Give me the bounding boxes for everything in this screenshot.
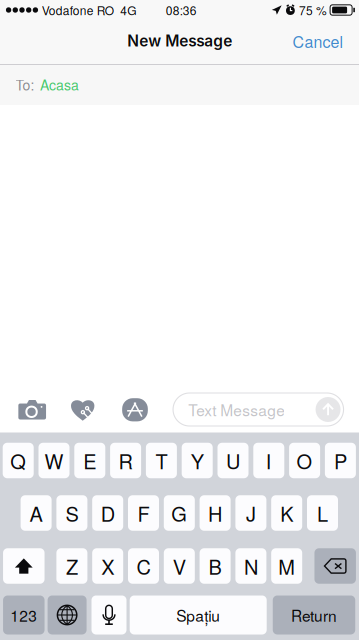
button[interactable]: A bbox=[21, 495, 52, 531]
staticText: C bbox=[136, 552, 150, 580]
staticText: New Message bbox=[127, 32, 232, 50]
button[interactable]: Cancel bbox=[283, 23, 353, 59]
staticText: D bbox=[101, 499, 115, 527]
staticText: To: bbox=[15, 74, 34, 94]
staticText: Z bbox=[66, 552, 78, 580]
button[interactable]: B bbox=[200, 548, 231, 584]
staticText: Y bbox=[191, 446, 204, 475]
button[interactable]: O bbox=[289, 443, 320, 478]
button[interactable]: D bbox=[92, 495, 123, 531]
button[interactable]: Text Message bbox=[173, 393, 344, 426]
button[interactable]: Spațiu bbox=[130, 595, 267, 634]
staticText: Return bbox=[291, 604, 337, 626]
button[interactable]: Y bbox=[182, 443, 213, 478]
button[interactable]: L bbox=[307, 495, 338, 531]
button[interactable]: H bbox=[200, 495, 231, 531]
staticText: Text Message bbox=[188, 398, 285, 421]
button[interactable]: 123 bbox=[3, 595, 45, 634]
button[interactable]: J bbox=[235, 495, 266, 531]
staticText: Acasa bbox=[40, 74, 79, 94]
button[interactable]: F bbox=[128, 495, 159, 531]
button[interactable]: Delete bbox=[314, 548, 356, 584]
button[interactable]: G bbox=[164, 495, 195, 531]
staticText: T bbox=[155, 446, 167, 475]
staticText: Vodafone RO bbox=[42, 1, 114, 19]
button[interactable]: Shift bbox=[3, 548, 45, 584]
button[interactable]: iMessage Apps bbox=[115, 390, 155, 430]
staticText: F bbox=[137, 499, 149, 527]
button[interactable]: P bbox=[325, 443, 356, 478]
staticText: M bbox=[278, 552, 295, 580]
button[interactable]: Z bbox=[56, 548, 87, 584]
staticText: W bbox=[44, 446, 63, 475]
staticText: 08:36 bbox=[166, 1, 197, 19]
staticText: Cancel bbox=[292, 29, 343, 52]
button[interactable]: Next keyboard bbox=[48, 595, 87, 634]
staticText: B bbox=[209, 552, 222, 580]
staticText: G bbox=[171, 499, 187, 527]
button[interactable]: Digital Touch bbox=[63, 390, 103, 430]
staticText: I bbox=[266, 446, 272, 475]
button[interactable]: R bbox=[110, 443, 141, 478]
button[interactable]: Q bbox=[3, 443, 34, 478]
button[interactable]: U bbox=[217, 443, 248, 478]
button[interactable]: N bbox=[235, 548, 266, 584]
button[interactable]: T bbox=[146, 443, 177, 478]
staticText: X bbox=[101, 552, 114, 580]
button[interactable]: Return bbox=[273, 595, 355, 634]
staticText: L bbox=[317, 499, 328, 527]
button[interactable]: M bbox=[271, 548, 302, 584]
staticText: H bbox=[208, 499, 222, 527]
staticText: N bbox=[244, 552, 258, 580]
button[interactable]: E bbox=[74, 443, 105, 478]
staticText: E bbox=[83, 446, 96, 475]
button[interactable]: I bbox=[253, 443, 284, 478]
button[interactable]: W bbox=[38, 443, 69, 478]
staticText: Q bbox=[10, 446, 26, 475]
button[interactable]: K bbox=[271, 495, 302, 531]
staticText: 75 % bbox=[299, 1, 327, 19]
button[interactable]: S bbox=[56, 495, 87, 531]
staticText: O bbox=[297, 446, 313, 475]
staticText: K bbox=[280, 499, 293, 527]
button[interactable]: X bbox=[92, 548, 123, 584]
staticText: A bbox=[30, 499, 43, 527]
staticText: J bbox=[246, 499, 256, 527]
staticText: V bbox=[173, 552, 186, 580]
staticText: P bbox=[334, 446, 347, 475]
staticText: 4G bbox=[120, 1, 136, 19]
button[interactable]: Dictation bbox=[91, 595, 126, 634]
staticText: 123 bbox=[10, 604, 37, 626]
staticText: R bbox=[119, 446, 133, 475]
staticText: Spațiu bbox=[176, 604, 220, 626]
button[interactable]: V bbox=[164, 548, 195, 584]
staticText: U bbox=[226, 446, 240, 475]
staticText: S bbox=[65, 499, 78, 527]
button[interactable]: Camera bbox=[12, 389, 52, 429]
button[interactable]: C bbox=[128, 548, 159, 584]
